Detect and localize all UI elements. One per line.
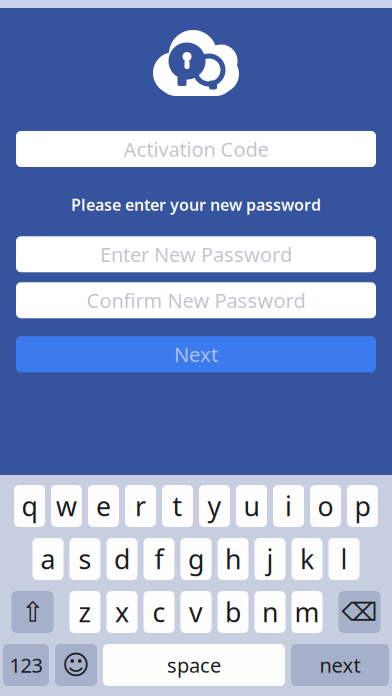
staticText: j [266,541,273,577]
button[interactable]: c [143,591,174,633]
staticText: t [172,488,182,524]
button[interactable]: h [217,538,248,580]
staticText: s [78,541,91,577]
button[interactable]: u [236,485,267,527]
button[interactable]: y [199,485,230,527]
button[interactable]: f [143,538,174,580]
staticText: c [152,594,165,630]
button[interactable]: 123 [3,644,49,686]
button[interactable]: Delete [338,591,380,633]
staticText: y [207,488,221,524]
staticText: u [243,488,259,524]
button[interactable]: m [291,591,322,633]
staticText: ⌫ [341,598,377,626]
staticText: z [78,594,91,630]
staticText: h [225,541,241,577]
staticText: Activation Code [123,136,268,162]
button[interactable]: d [106,538,137,580]
staticText: ⇧ [21,596,44,628]
button[interactable]: b [217,591,248,633]
button[interactable]: n [254,591,285,633]
button[interactable]: r [125,485,156,527]
button[interactable]: w [51,485,82,527]
button[interactable]: Activation Code [16,131,376,167]
button[interactable]: space [103,644,285,686]
staticText: f [154,541,163,577]
staticText: m [294,594,319,630]
button[interactable]: next [291,644,389,686]
staticText: v [189,594,203,630]
button[interactable]: e [88,485,119,527]
button[interactable]: q [14,485,45,527]
button[interactable]: z [69,591,100,633]
button[interactable]: j [254,538,285,580]
button[interactable]: Emoji keyboard [55,644,97,686]
staticText: x [115,594,129,630]
staticText: Confirm New Password [86,287,305,314]
staticText: p [354,488,370,524]
button[interactable]: Enter New Password [16,236,376,272]
button[interactable]: x [106,591,137,633]
button[interactable]: i [273,485,304,527]
staticText: g [188,541,204,577]
staticText: o [317,488,333,524]
staticText: b [225,594,241,630]
button[interactable]: l [328,538,359,580]
staticText: Enter New Password [100,241,292,268]
staticText: Please enter your new password [71,194,321,215]
staticText: e [96,488,111,524]
staticText: r [135,488,146,524]
button[interactable]: s [69,538,100,580]
staticText: next [319,652,360,678]
button[interactable]: Next [16,336,376,372]
button[interactable]: o [310,485,341,527]
button[interactable]: a [32,538,63,580]
staticText: i [285,488,292,524]
button[interactable]: t [162,485,193,527]
button[interactable]: Confirm New Password [16,282,376,318]
staticText: ☺ [62,650,90,680]
button[interactable]: v [180,591,211,633]
button[interactable]: g [180,538,211,580]
staticText: q [21,488,37,524]
staticText: 123 [9,652,42,678]
staticText: n [262,594,278,630]
staticText: a [40,541,55,577]
staticText: d [114,541,130,577]
staticText: w [56,488,77,524]
staticText: space [167,652,221,678]
button[interactable]: p [347,485,378,527]
staticText: k [300,541,314,577]
button[interactable]: Shift [11,591,53,633]
staticText: l [340,541,347,577]
staticText: Next [174,341,218,368]
button[interactable]: k [291,538,322,580]
